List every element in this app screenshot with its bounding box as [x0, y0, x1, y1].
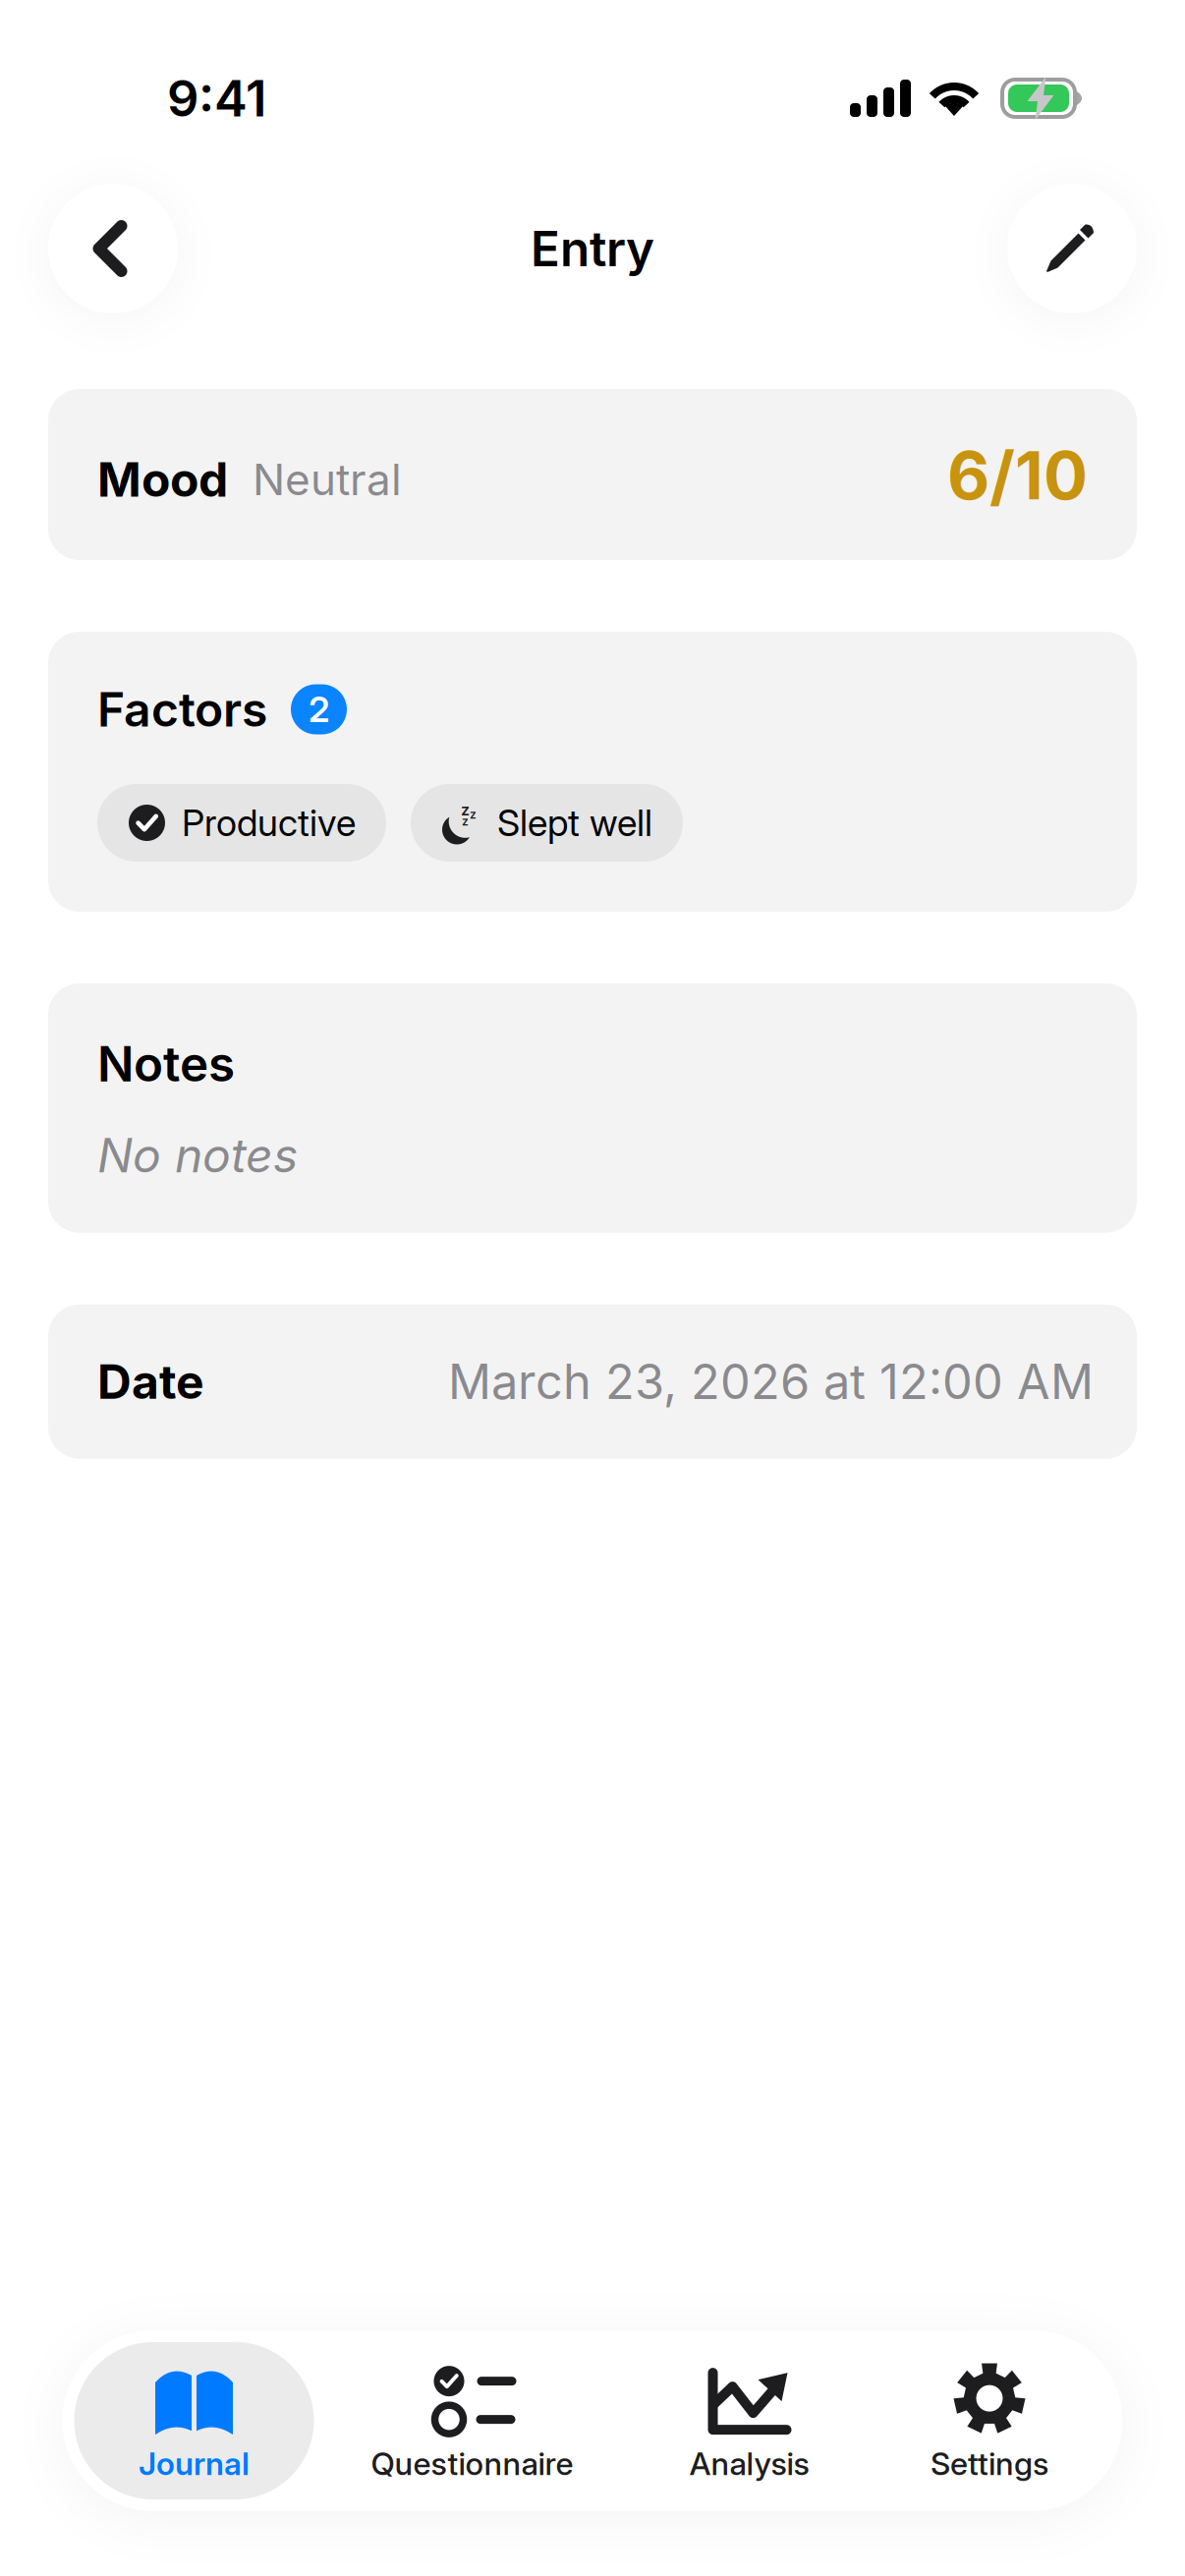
- staticText: Entry: [531, 219, 654, 278]
- staticText: Date: [97, 1353, 204, 1410]
- staticText: Analysis: [689, 2444, 809, 2482]
- staticText: Factors: [97, 681, 267, 738]
- button[interactable]: Edit: [1007, 184, 1137, 313]
- staticText: z: [461, 800, 470, 819]
- staticText: Journal: [139, 2444, 250, 2482]
- staticText: Slept well: [497, 801, 652, 845]
- staticText: z: [462, 814, 469, 828]
- button[interactable]: Analysis: [630, 2342, 868, 2499]
- staticText: Neutral: [253, 453, 402, 506]
- button[interactable]: Questionnaire: [314, 2342, 630, 2499]
- staticText: Questionnaire: [371, 2444, 573, 2482]
- staticText: Settings: [931, 2444, 1048, 2482]
- button[interactable]: Journal: [74, 2342, 314, 2499]
- staticText: No notes: [97, 1127, 298, 1184]
- staticText: 9:41: [167, 68, 266, 128]
- staticText: 2: [309, 688, 329, 731]
- staticText: March 23, 2026 at 12:00 AM: [448, 1353, 1094, 1411]
- button[interactable]: Back: [48, 184, 178, 313]
- staticText: z: [470, 807, 477, 821]
- staticText: Notes: [97, 1035, 235, 1093]
- button[interactable]: Settings: [868, 2342, 1111, 2499]
- staticText: Productive: [182, 801, 356, 845]
- staticText: 6/10: [947, 436, 1088, 515]
- staticText: Mood: [97, 451, 228, 508]
